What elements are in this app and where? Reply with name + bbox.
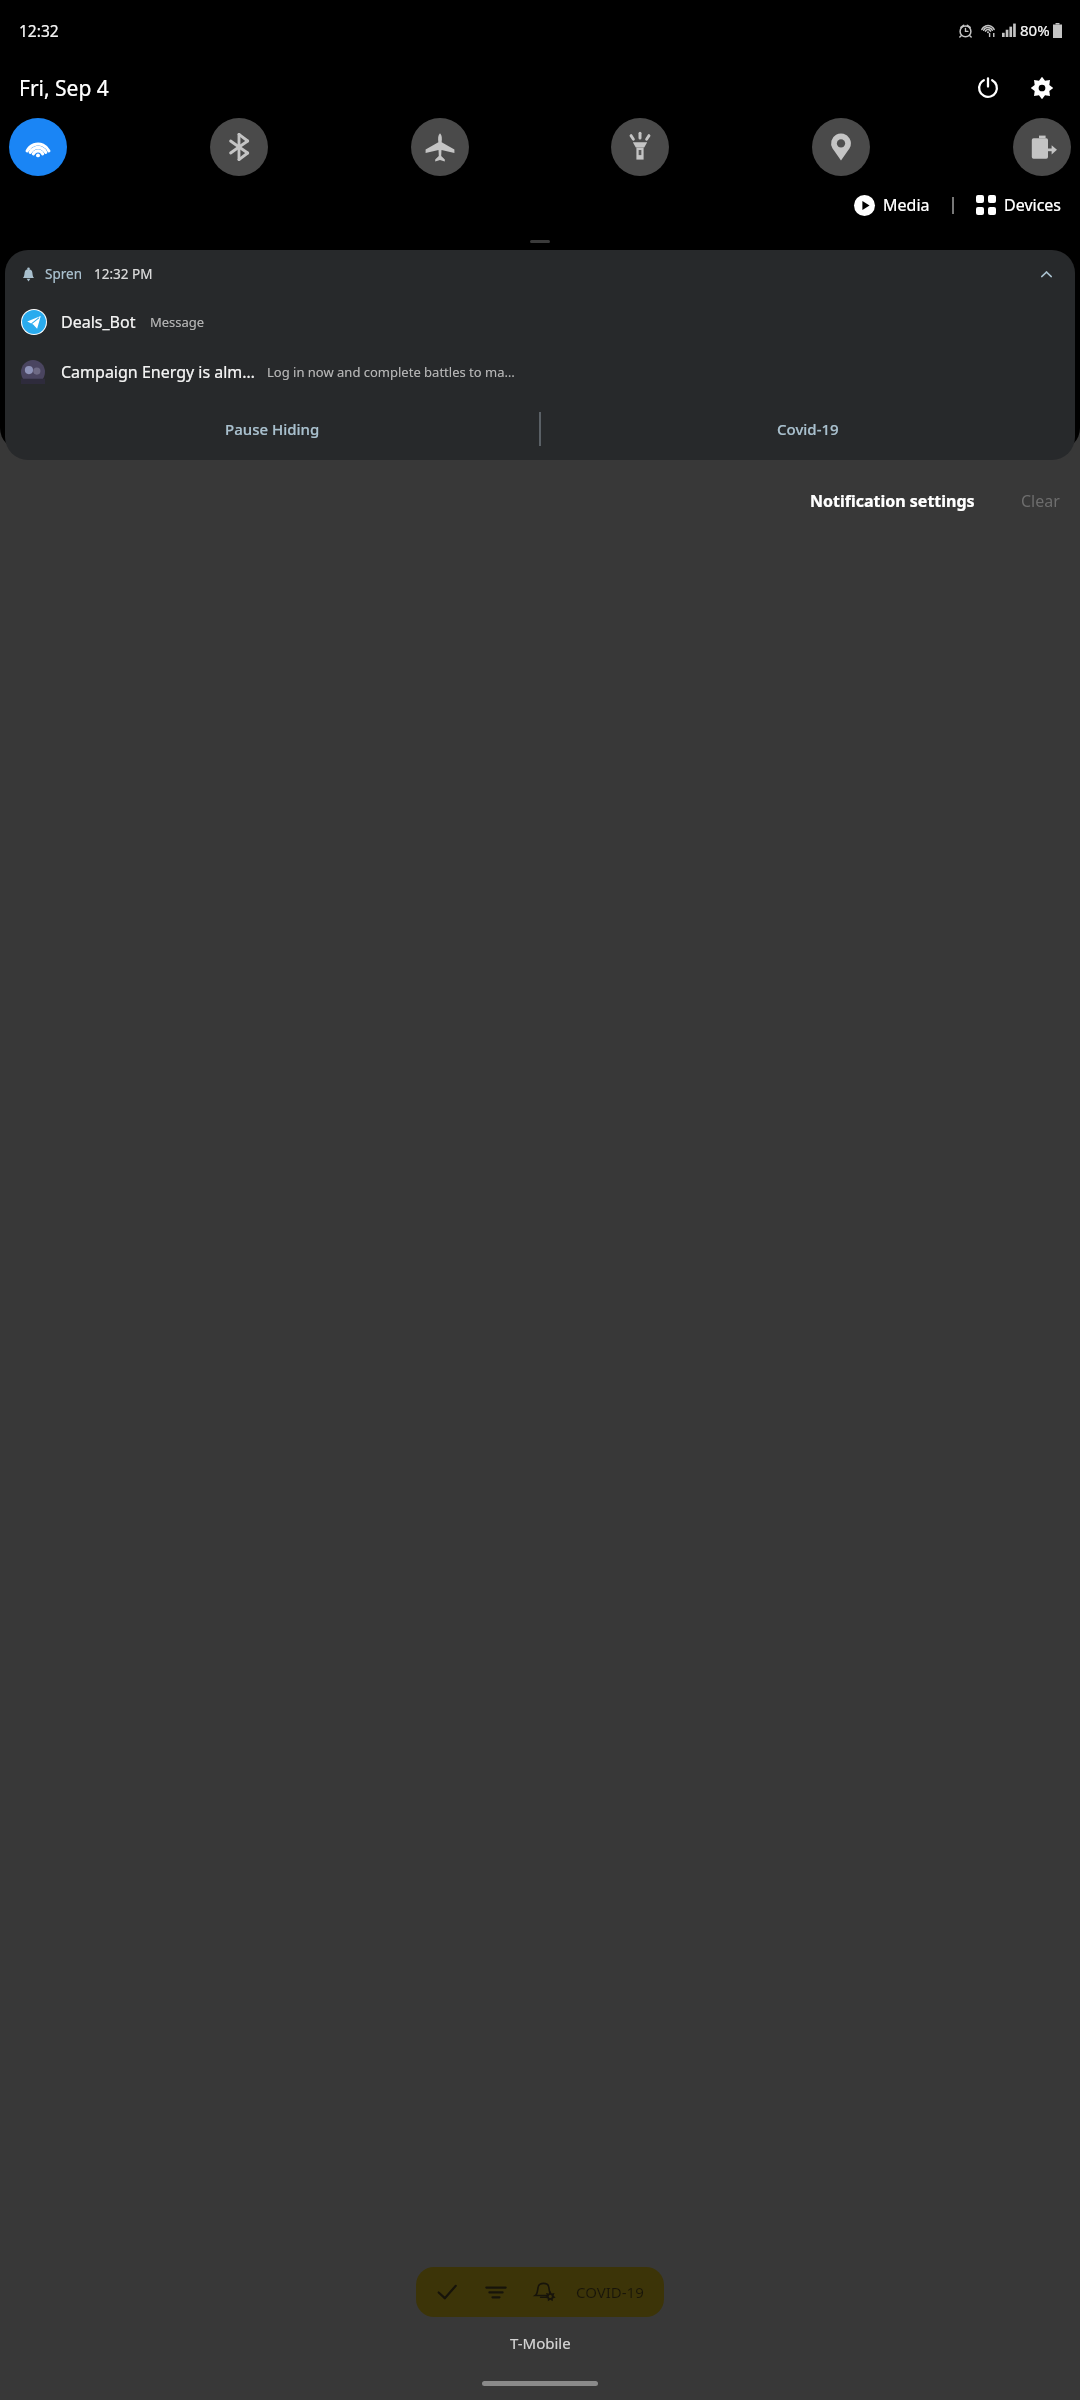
button[interactable]: Settings xyxy=(1020,66,1064,110)
button[interactable]: Clear xyxy=(1011,482,1070,520)
staticText: 80% xyxy=(1020,20,1050,40)
button[interactable]: Power share xyxy=(1013,118,1071,176)
button[interactable]: Devices xyxy=(970,190,1068,220)
staticText: Deals_Bot xyxy=(61,311,136,333)
staticText: Fri, Sep 4 xyxy=(19,74,109,103)
staticText: 12:32 xyxy=(19,20,59,41)
staticText: Campaign Energy is alm… xyxy=(61,361,255,383)
button[interactable]: COVID-19 xyxy=(416,2267,664,2317)
staticText: Spren xyxy=(45,265,82,283)
button[interactable]: Wi-Fi xyxy=(9,118,67,176)
button[interactable]: Power xyxy=(966,66,1010,110)
staticText: Pause Hiding xyxy=(225,419,320,439)
staticText: Message xyxy=(150,313,205,331)
button[interactable]: Airplane mode xyxy=(411,118,469,176)
staticText: T-Mobile xyxy=(510,2333,571,2353)
button[interactable]: Media xyxy=(848,190,936,220)
button[interactable]: Flashlight xyxy=(611,118,669,176)
button[interactable]: Covid-19 xyxy=(541,398,1075,460)
button[interactable]: Collapse xyxy=(1031,259,1061,289)
staticText: Log in now and complete battles to ma… xyxy=(267,363,515,381)
staticText: Devices xyxy=(1004,194,1062,216)
staticText: COVID-19 xyxy=(576,2282,644,2302)
button[interactable]: Location xyxy=(812,118,870,176)
button[interactable]: Bluetooth xyxy=(210,118,268,176)
staticText: Covid-19 xyxy=(777,419,839,439)
staticText: 12:32 PM xyxy=(94,265,153,283)
button[interactable]: Spren xyxy=(5,250,1075,460)
button[interactable]: Notification settings xyxy=(800,482,985,520)
button[interactable]: Pause Hiding xyxy=(5,398,539,460)
staticText: Clear xyxy=(1021,490,1060,512)
staticText: Media xyxy=(883,194,930,216)
staticText: Notification settings xyxy=(810,490,975,512)
